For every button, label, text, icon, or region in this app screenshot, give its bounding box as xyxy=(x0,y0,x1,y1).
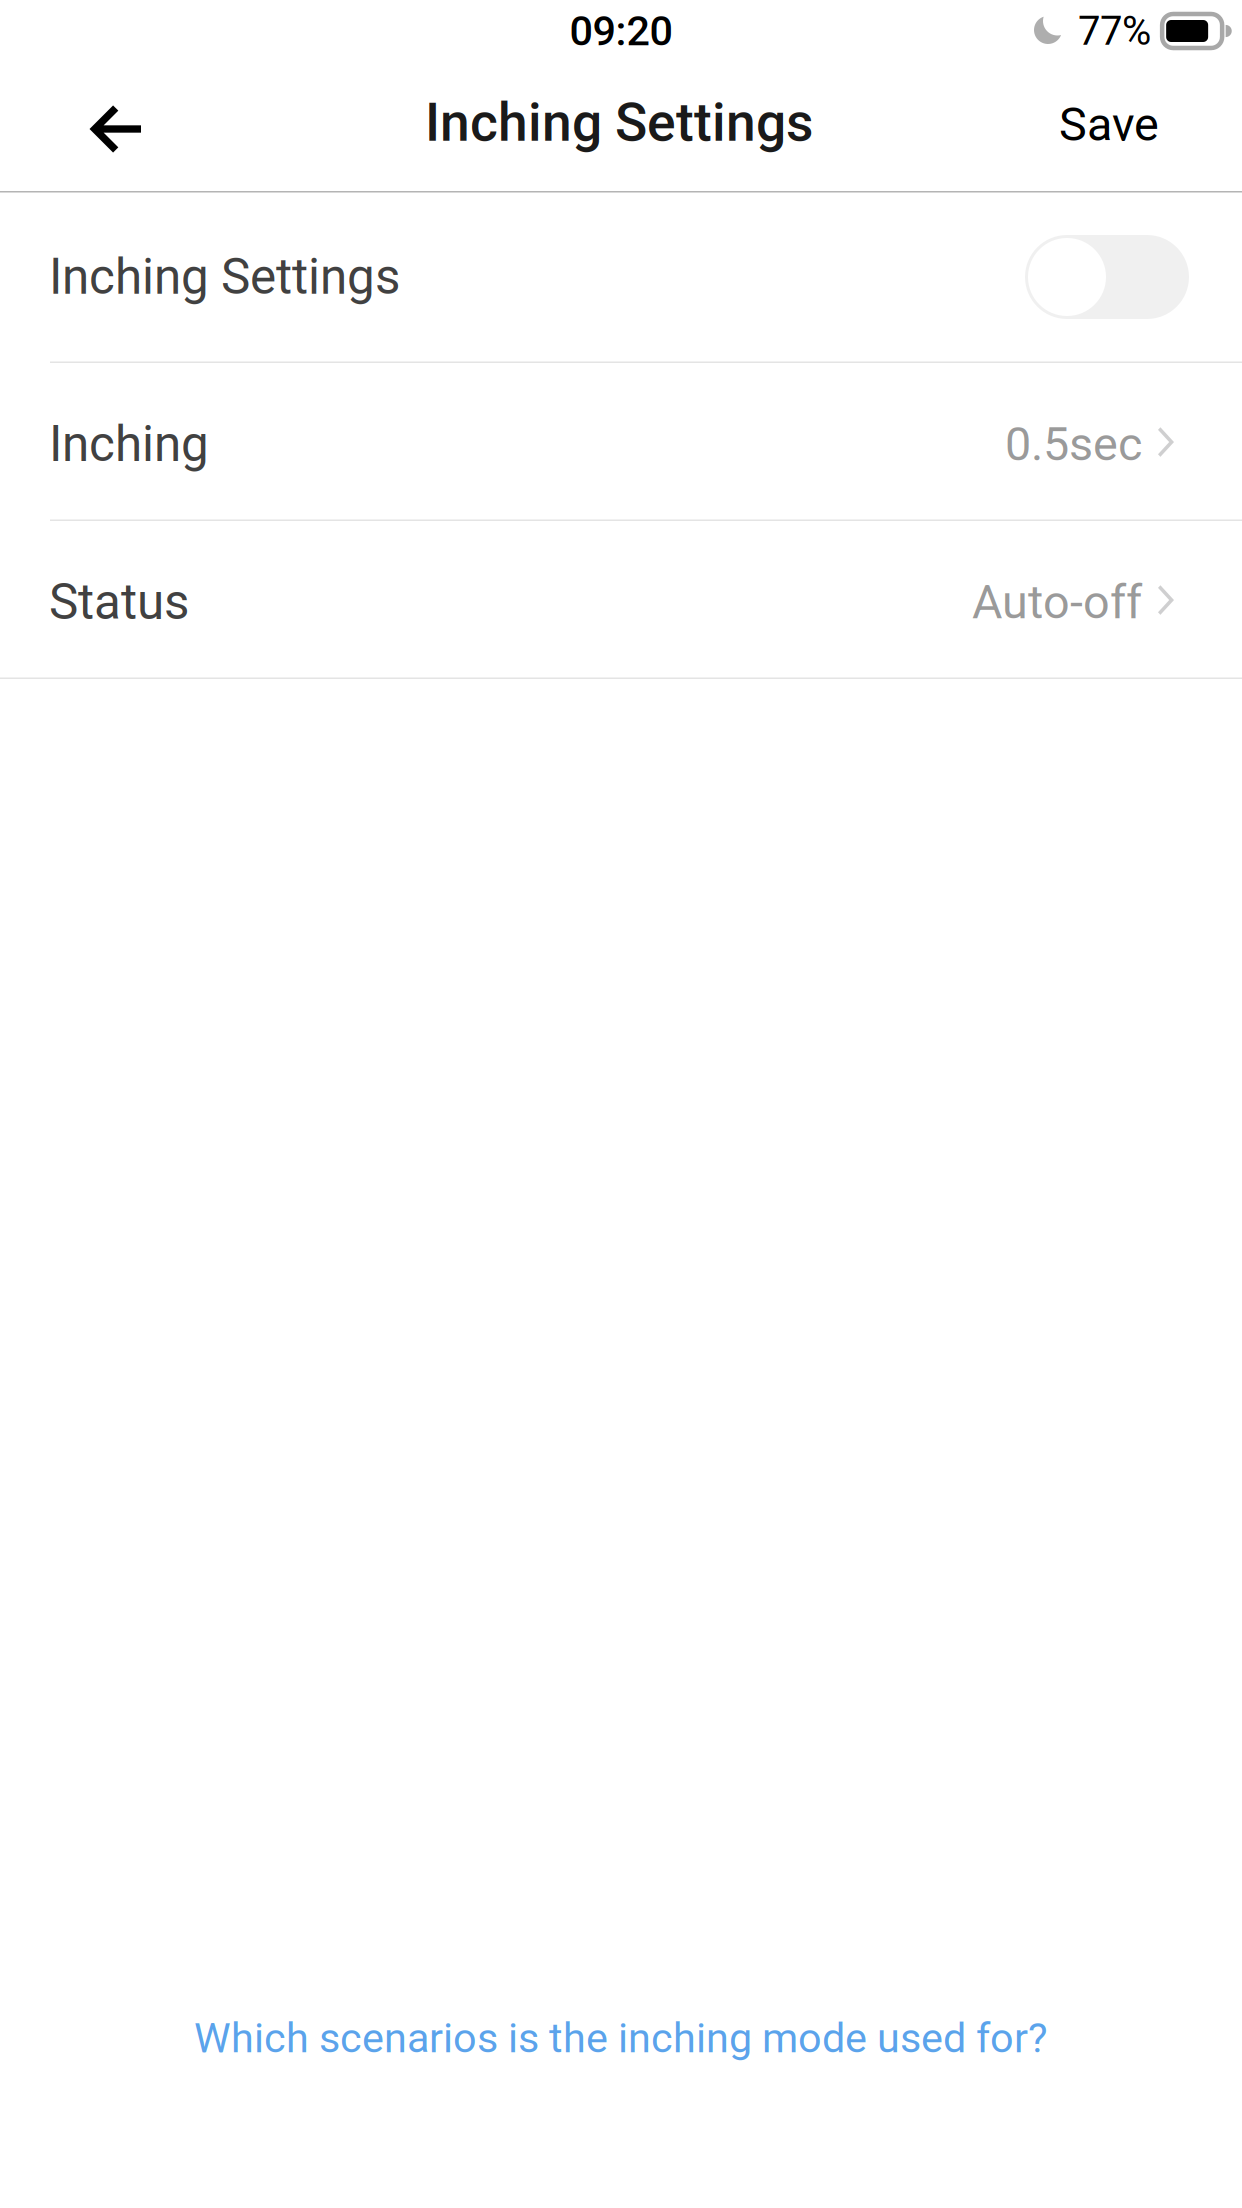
staticText: Which scenarios is the inching mode used… xyxy=(194,2014,1048,2062)
button[interactable]: Inching Settings xyxy=(1013,223,1201,331)
button[interactable]: Status xyxy=(0,521,1242,677)
staticText: Save xyxy=(1059,97,1159,152)
staticText: Inching Settings xyxy=(425,91,813,154)
button[interactable]: Inching xyxy=(0,363,1242,519)
staticText: Inching Settings xyxy=(49,248,400,306)
button[interactable]: Back xyxy=(0,62,210,191)
staticText: 09:20 xyxy=(569,7,672,55)
staticText: 77% xyxy=(1078,8,1151,54)
staticText: Inching xyxy=(49,415,209,473)
staticText: 0.5sec xyxy=(1005,417,1142,472)
staticText: Auto-off xyxy=(972,575,1142,630)
button[interactable]: Save xyxy=(982,62,1242,191)
button[interactable]: Which scenarios is the inching mode used… xyxy=(0,1993,1242,2083)
staticText: Status xyxy=(49,573,189,631)
